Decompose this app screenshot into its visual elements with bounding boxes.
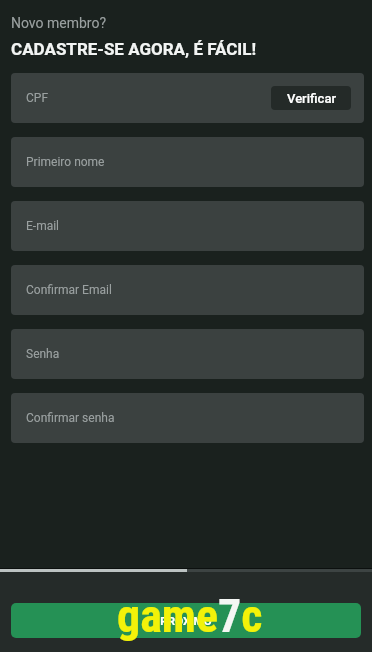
button[interactable]: Confirmar Email bbox=[11, 265, 364, 315]
staticText: CPF bbox=[26, 91, 49, 105]
button[interactable]: Senha bbox=[11, 329, 364, 379]
button[interactable]: CPF bbox=[11, 73, 364, 123]
button[interactable]: PRÓXIMO bbox=[11, 603, 361, 638]
staticText: game7c bbox=[117, 589, 263, 643]
staticText: Confirmar Email bbox=[26, 283, 112, 297]
button[interactable]: E-mail bbox=[11, 201, 364, 251]
staticText: CADASTRE-SE AGORA, É FÁCIL! bbox=[11, 39, 257, 59]
staticText: Novo membro? bbox=[11, 15, 107, 31]
button[interactable]: Primeiro nome bbox=[11, 137, 364, 187]
button[interactable]: Verificar bbox=[271, 86, 351, 110]
staticText: PRÓXIMO bbox=[160, 614, 212, 627]
staticText: Primeiro nome bbox=[26, 155, 105, 169]
staticText: Verificar bbox=[287, 91, 336, 106]
staticText: E-mail bbox=[26, 219, 60, 233]
staticText: Confirmar senha bbox=[26, 411, 115, 425]
staticText: Senha bbox=[26, 347, 60, 361]
button[interactable]: Confirmar senha bbox=[11, 393, 364, 443]
